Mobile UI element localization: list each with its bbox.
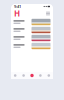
button[interactable] xyxy=(11,18,53,26)
button[interactable]: Tab 2 xyxy=(19,72,28,79)
button[interactable]: Menu xyxy=(46,12,50,15)
button[interactable] xyxy=(11,42,53,50)
button[interactable]: Tab 4 xyxy=(36,72,45,79)
button[interactable]: Tab 5 xyxy=(45,72,53,79)
staticText: H xyxy=(14,8,20,19)
button[interactable]: Tab 1 xyxy=(11,72,19,79)
button[interactable] xyxy=(11,34,53,42)
button[interactable] xyxy=(11,26,53,34)
staticText: 9:41 xyxy=(14,4,21,9)
button[interactable]: Tab 3 xyxy=(28,72,36,79)
